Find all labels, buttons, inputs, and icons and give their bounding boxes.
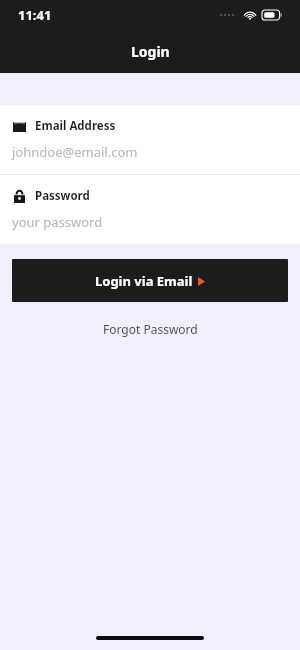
other: Email xyxy=(12,119,27,134)
staticText: your password xyxy=(12,213,103,231)
staticText: 11:41 xyxy=(18,6,52,24)
staticText: Password xyxy=(35,188,90,204)
other: Password xyxy=(12,189,27,204)
staticText: Login via Email xyxy=(95,272,193,290)
staticText: Email Address xyxy=(35,118,116,134)
staticText: Login xyxy=(131,42,170,61)
button[interactable]: Login via Email xyxy=(12,259,288,302)
button[interactable]: Email xyxy=(0,105,300,174)
staticText: Forgot Password xyxy=(103,321,198,337)
staticText: johndoe@email.com xyxy=(12,143,138,161)
button[interactable]: Forgot Password xyxy=(0,317,300,341)
button[interactable]: Password xyxy=(0,175,300,244)
